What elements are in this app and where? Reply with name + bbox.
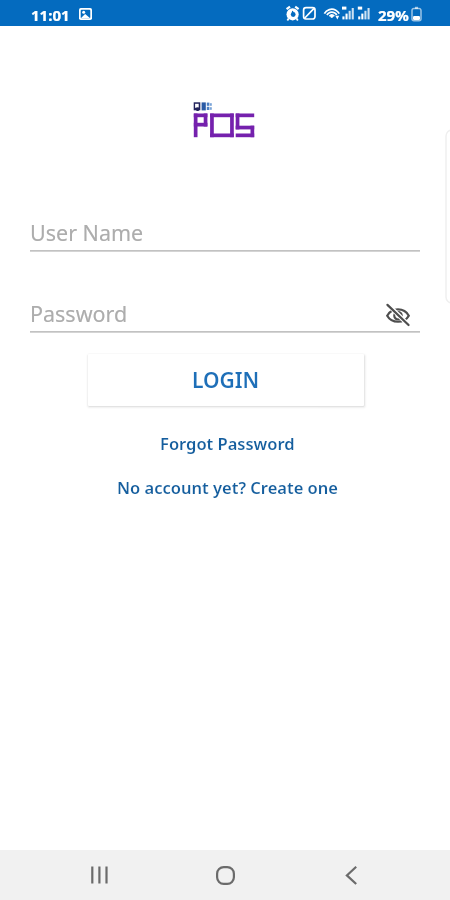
staticText: Password: [30, 299, 128, 328]
button[interactable]: Home: [197, 853, 253, 897]
button[interactable]: No account yet? Create one: [107, 472, 348, 502]
button[interactable]: LOGIN: [88, 354, 364, 406]
button[interactable]: Recents: [71, 853, 127, 897]
button[interactable]: Back: [323, 853, 379, 897]
staticText: User Name: [30, 218, 144, 247]
staticText: 11:01: [31, 5, 70, 25]
staticText: Forgot Password: [160, 432, 295, 454]
staticText: LOGIN: [192, 366, 260, 395]
button[interactable]: Forgot Password: [150, 428, 305, 458]
staticText: No account yet? Create one: [117, 476, 338, 498]
staticText: 29%: [378, 5, 409, 25]
button[interactable]: Show password: [378, 296, 418, 332]
